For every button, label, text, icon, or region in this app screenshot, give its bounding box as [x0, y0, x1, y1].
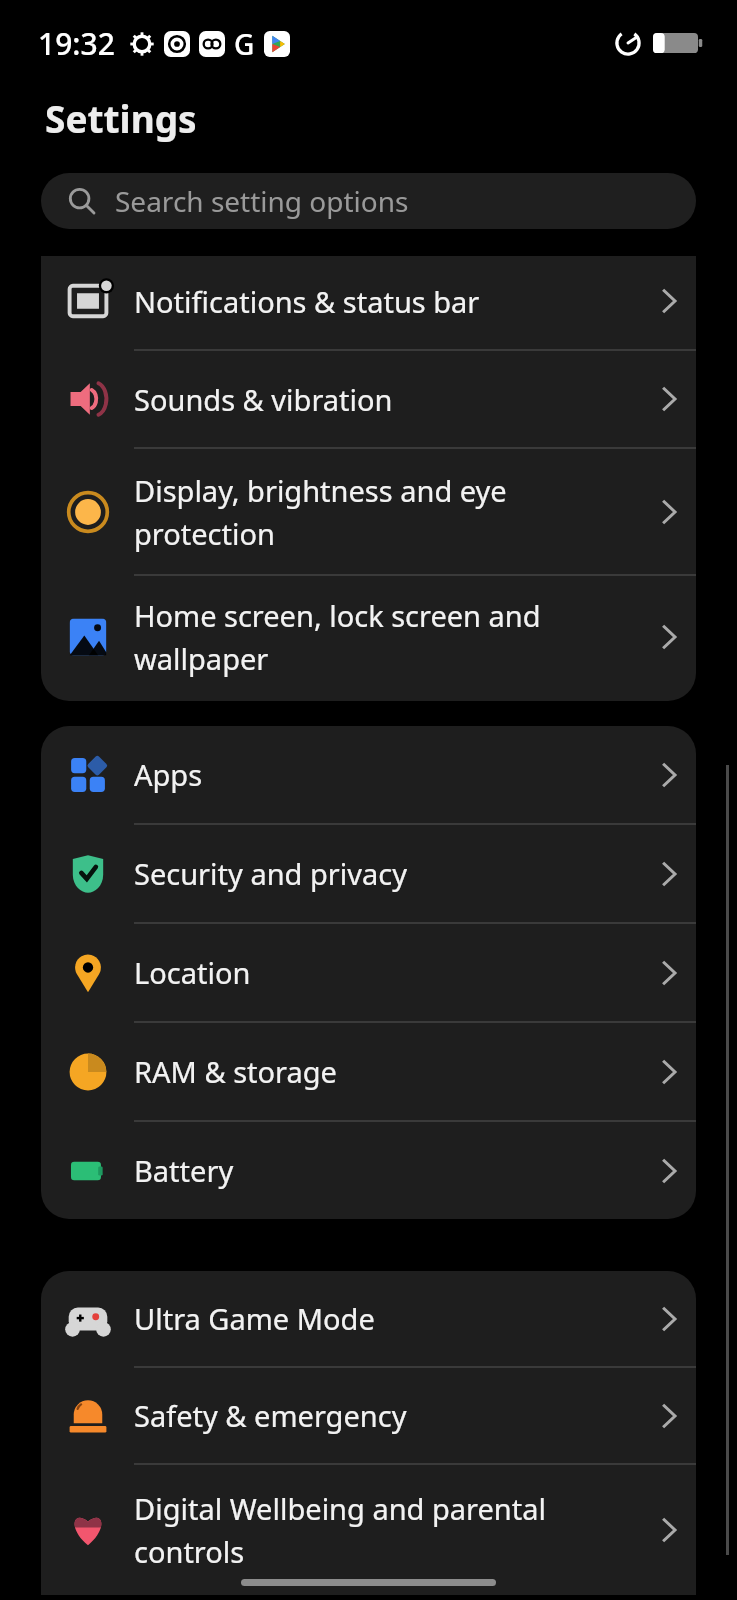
- staticText: Battery: [134, 1151, 619, 1190]
- button[interactable]: Search setting options: [41, 173, 696, 229]
- staticText: Settings: [45, 93, 197, 143]
- staticText: Apps: [134, 755, 619, 794]
- staticText: G: [234, 25, 255, 63]
- staticText: Digital Wellbeing and parental controls: [134, 1489, 619, 1571]
- staticText: Ultra Game Mode: [134, 1299, 619, 1338]
- staticText: RAM & storage: [134, 1052, 619, 1091]
- button[interactable]: Digital Wellbeing and parental controls: [41, 1465, 696, 1595]
- staticText: Sounds & vibration: [134, 380, 619, 419]
- button[interactable]: Security and privacy: [41, 825, 696, 922]
- button[interactable]: Sounds & vibration: [41, 351, 696, 447]
- button[interactable]: Location: [41, 924, 696, 1021]
- staticText: 19:32: [38, 23, 115, 64]
- staticText: Security and privacy: [134, 854, 619, 893]
- button[interactable]: Home screen, lock screen and wallpaper: [41, 576, 696, 698]
- staticText: Search setting options: [115, 182, 409, 220]
- staticText: Safety & emergency: [134, 1396, 619, 1435]
- staticText: Notifications & status bar: [134, 282, 619, 321]
- button[interactable]: Notifications & status bar: [41, 256, 696, 349]
- button[interactable]: Apps: [41, 726, 696, 823]
- button[interactable]: Battery: [41, 1122, 696, 1219]
- staticText: Location: [134, 953, 619, 992]
- button[interactable]: RAM & storage: [41, 1023, 696, 1120]
- button[interactable]: Ultra Game Mode: [41, 1271, 696, 1366]
- button[interactable]: Safety & emergency: [41, 1368, 696, 1463]
- button[interactable]: Display, brightness and eye protection: [41, 449, 696, 574]
- staticText: Home screen, lock screen and wallpaper: [134, 596, 619, 678]
- staticText: Display, brightness and eye protection: [134, 471, 619, 553]
